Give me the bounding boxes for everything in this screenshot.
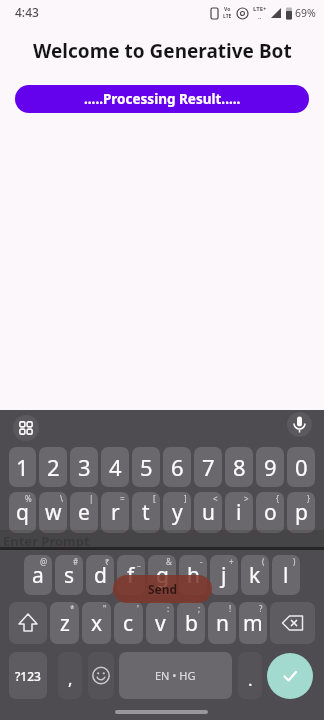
button[interactable]: - — [179, 555, 207, 595]
button[interactable]: [ — [132, 492, 160, 533]
staticText: _ — [137, 556, 141, 567]
button[interactable]: 4 — [101, 447, 129, 487]
button[interactable]: 1 — [9, 447, 36, 487]
staticText: ) — [293, 556, 296, 567]
staticText: 3 — [78, 452, 91, 482]
staticText: | — [89, 493, 94, 504]
staticText: Enter Prompt — [3, 532, 90, 550]
staticText: s — [64, 561, 75, 590]
staticText: 0 — [295, 452, 308, 482]
staticText: i — [236, 498, 242, 527]
staticText: * — [70, 603, 75, 614]
button[interactable]: 8 — [225, 447, 253, 487]
staticText: } — [307, 493, 311, 504]
staticText: 1 — [16, 452, 29, 482]
button[interactable]: 7 — [194, 447, 222, 487]
staticText: ; — [198, 603, 201, 614]
staticText: > — [244, 493, 249, 504]
button[interactable]: } — [287, 492, 315, 533]
button[interactable]: EN • HG — [119, 652, 232, 699]
button[interactable]: , — [58, 652, 82, 699]
staticText: 2 — [47, 452, 60, 482]
staticText: . — [248, 668, 253, 691]
button[interactable]: ?123 — [9, 652, 47, 699]
staticText: .....Processing Result..... — [84, 90, 241, 108]
staticText: % — [25, 493, 32, 504]
staticText: : — [167, 603, 170, 614]
button[interactable]: 3 — [70, 447, 98, 487]
staticText: ? — [259, 603, 263, 614]
button[interactable]: < — [194, 492, 222, 533]
staticText: ' — [137, 603, 139, 614]
button[interactable]: 9 — [256, 447, 284, 487]
staticText: 6 — [171, 452, 184, 482]
staticText: a — [32, 561, 44, 590]
button[interactable]: ; — [177, 602, 205, 644]
button[interactable]: ₹ — [86, 555, 114, 595]
staticText: " — [103, 603, 107, 614]
staticText: o — [264, 498, 277, 527]
button[interactable]: ] — [163, 492, 191, 533]
button[interactable]: 6 — [163, 447, 191, 487]
staticText: q — [16, 498, 29, 527]
staticText: ?123 — [15, 668, 41, 684]
staticText: ! — [229, 603, 232, 614]
button[interactable]: % — [9, 492, 36, 533]
staticText: 5 — [140, 452, 153, 482]
staticText: [ — [153, 493, 156, 504]
button[interactable]: { — [256, 492, 284, 533]
button[interactable]: \ — [39, 492, 67, 533]
button[interactable]: ? — [239, 602, 267, 644]
staticText: v — [155, 609, 166, 638]
button[interactable]: + — [210, 555, 238, 595]
staticText: h — [187, 561, 200, 590]
staticText: w — [45, 498, 62, 527]
button[interactable] — [270, 602, 315, 644]
staticText: e — [78, 498, 90, 527]
button[interactable] — [287, 412, 312, 437]
staticText: # — [73, 556, 79, 567]
staticText: l — [283, 561, 289, 590]
staticText: 8 — [233, 452, 246, 482]
button[interactable]: & — [148, 555, 176, 595]
button[interactable] — [267, 653, 313, 699]
button[interactable]: . — [238, 652, 262, 699]
staticText: r — [111, 498, 120, 527]
staticText: b — [185, 609, 198, 638]
staticText: n — [216, 609, 229, 638]
staticText: LTE — [223, 13, 232, 20]
staticText: 4 — [109, 452, 122, 482]
staticText: u — [202, 498, 215, 527]
button[interactable]: 0 — [287, 447, 315, 487]
button[interactable] — [88, 652, 114, 699]
staticText: Welcome to Generative Bot — [33, 38, 292, 64]
button[interactable]: " — [82, 602, 111, 644]
staticText: 69% — [295, 6, 316, 20]
button[interactable]: = — [101, 492, 129, 533]
staticText: 4:43 — [15, 4, 39, 20]
staticText: p — [295, 498, 308, 527]
button[interactable]: : — [146, 602, 174, 644]
button[interactable]: ! — [208, 602, 236, 644]
button[interactable]: 5 — [132, 447, 160, 487]
button[interactable]: * — [50, 602, 79, 644]
button[interactable]: _ — [117, 555, 145, 595]
button[interactable]: Send — [113, 575, 212, 603]
button[interactable]: ( — [241, 555, 269, 595]
button[interactable]: | — [70, 492, 98, 533]
button[interactable]: 2 — [39, 447, 67, 487]
button[interactable]: .....Processing Result..... — [15, 85, 309, 113]
staticText: t — [142, 498, 150, 527]
button[interactable]: ) — [272, 555, 300, 595]
staticText: \ — [60, 493, 63, 504]
button[interactable]: > — [225, 492, 253, 533]
button[interactable] — [13, 415, 39, 441]
button[interactable]: ' — [114, 602, 143, 644]
button[interactable]: # — [55, 555, 83, 595]
staticText: Vo — [224, 6, 231, 13]
staticText: ] — [184, 493, 187, 504]
button[interactable] — [9, 602, 47, 644]
button[interactable]: @ — [24, 555, 52, 595]
staticText: c — [123, 609, 134, 638]
staticText: , — [68, 667, 73, 690]
